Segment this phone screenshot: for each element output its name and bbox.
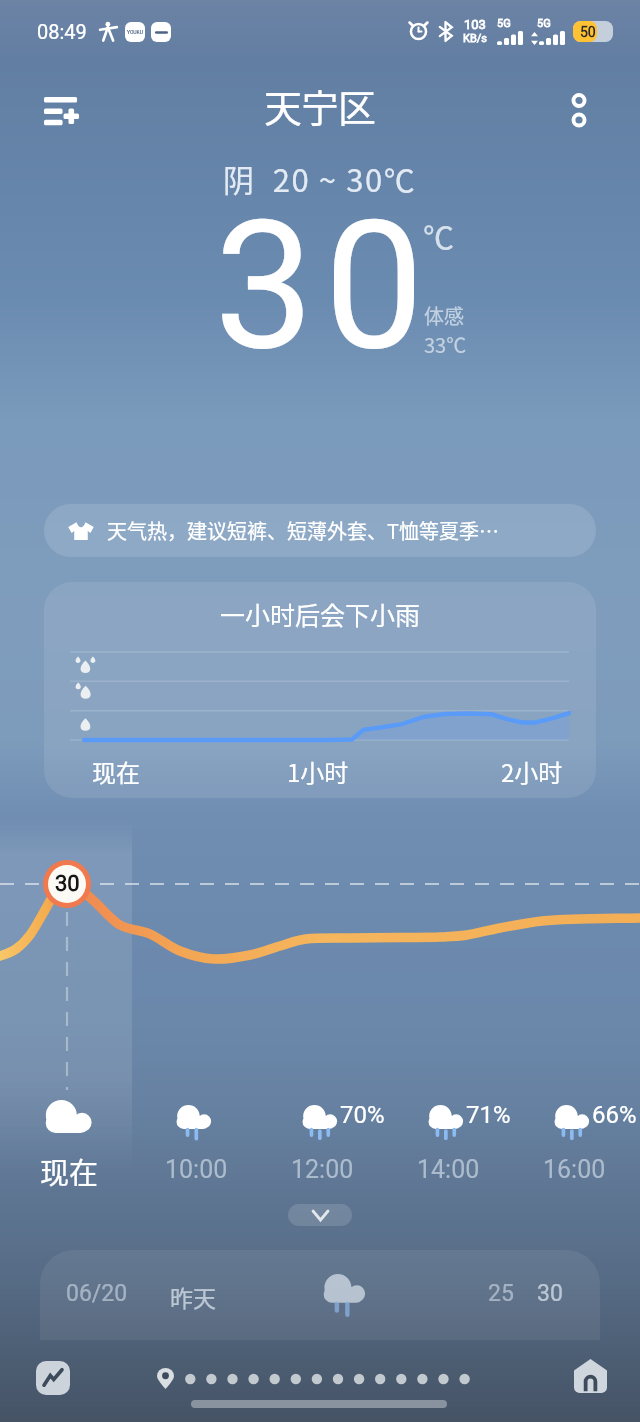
staticText: YOUKU xyxy=(127,29,143,35)
staticText: 30 xyxy=(537,1280,563,1307)
staticText: 天宁区 xyxy=(264,78,376,133)
staticText: 50 xyxy=(580,24,596,40)
staticText: 体感 xyxy=(424,301,464,330)
button[interactable]: Trends xyxy=(27,1352,79,1404)
staticText: 16:00 xyxy=(543,1155,606,1184)
staticText: 阴 20 ~ 30℃ xyxy=(223,156,417,201)
button[interactable]: 06/20 xyxy=(40,1250,600,1340)
staticText: 现在 xyxy=(40,1150,99,1192)
button[interactable]: 71% xyxy=(418,1090,542,1188)
staticText: 现在 xyxy=(92,754,140,789)
button[interactable]: Expand forecast xyxy=(288,1204,352,1226)
staticText: 66% xyxy=(592,1101,637,1129)
staticText: 5G xyxy=(537,17,551,30)
button[interactable]: More options xyxy=(551,83,607,139)
staticText: 12:00 xyxy=(291,1155,354,1184)
button[interactable]: 10:00 xyxy=(166,1090,290,1188)
staticText: 14:00 xyxy=(417,1155,480,1184)
staticText: 06/20 xyxy=(66,1280,128,1307)
staticText: 1小时 xyxy=(287,754,349,789)
button[interactable]: 66% xyxy=(544,1090,640,1188)
staticText: 103 xyxy=(464,17,486,32)
staticText: 25 xyxy=(488,1280,514,1307)
staticText: 33℃ xyxy=(424,330,467,359)
staticText: 天气热，建议短裤、短薄外套、T恤等夏季… xyxy=(107,516,499,545)
staticText: 70% xyxy=(340,1101,385,1129)
staticText: 10:00 xyxy=(165,1155,228,1184)
staticText: 2小时 xyxy=(501,754,563,789)
staticText: 08:49 xyxy=(37,20,87,43)
button[interactable]: 70% xyxy=(292,1090,416,1188)
button[interactable]: City list xyxy=(32,81,90,139)
button[interactable]: Home xyxy=(564,1350,616,1402)
staticText: 一小时后会下小雨 xyxy=(220,596,421,632)
staticText: 30 xyxy=(55,871,80,897)
staticText: 71% xyxy=(466,1101,511,1129)
button[interactable]: 现在 xyxy=(40,1090,164,1188)
staticText: 30 xyxy=(214,182,435,391)
staticText: KB/s xyxy=(463,32,487,45)
staticText: 5G xyxy=(497,17,511,30)
button[interactable]: 一小时后会下小雨 xyxy=(44,582,596,798)
button[interactable]: 天气热，建议短裤、短薄外套、T恤等夏季… xyxy=(44,504,596,557)
staticText: 昨天 xyxy=(170,1280,216,1313)
staticText: ℃ xyxy=(423,213,454,258)
